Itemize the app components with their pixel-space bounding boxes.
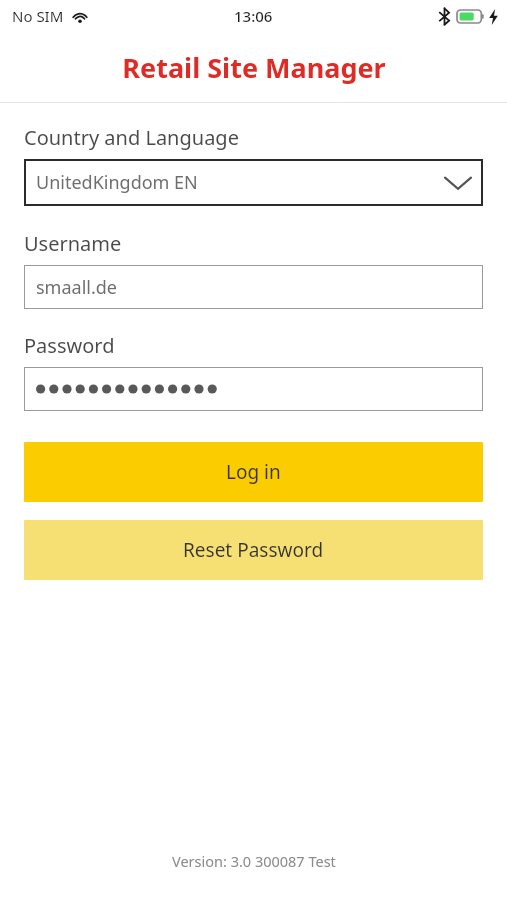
staticText: Country and Language xyxy=(24,124,239,151)
button[interactable]: Log in xyxy=(24,442,483,502)
button[interactable]: UnitedKingdom EN xyxy=(24,159,483,206)
staticText: 13:06 xyxy=(234,6,273,26)
staticText: No SIM xyxy=(12,6,64,26)
staticText: Log in xyxy=(226,459,281,485)
button[interactable]: Reset Password xyxy=(24,520,483,580)
staticText: Retail Site Manager xyxy=(122,49,386,86)
staticText: Username xyxy=(24,230,122,257)
button[interactable]: smaall.de xyxy=(24,265,483,309)
staticText: UnitedKingdom EN xyxy=(36,170,445,195)
staticText: smaall.de xyxy=(36,275,117,300)
button[interactable] xyxy=(24,367,483,411)
staticText: Reset Password xyxy=(183,537,324,563)
staticText: Password xyxy=(24,332,115,359)
staticText: Version: 3.0 300087 Test xyxy=(172,851,336,871)
